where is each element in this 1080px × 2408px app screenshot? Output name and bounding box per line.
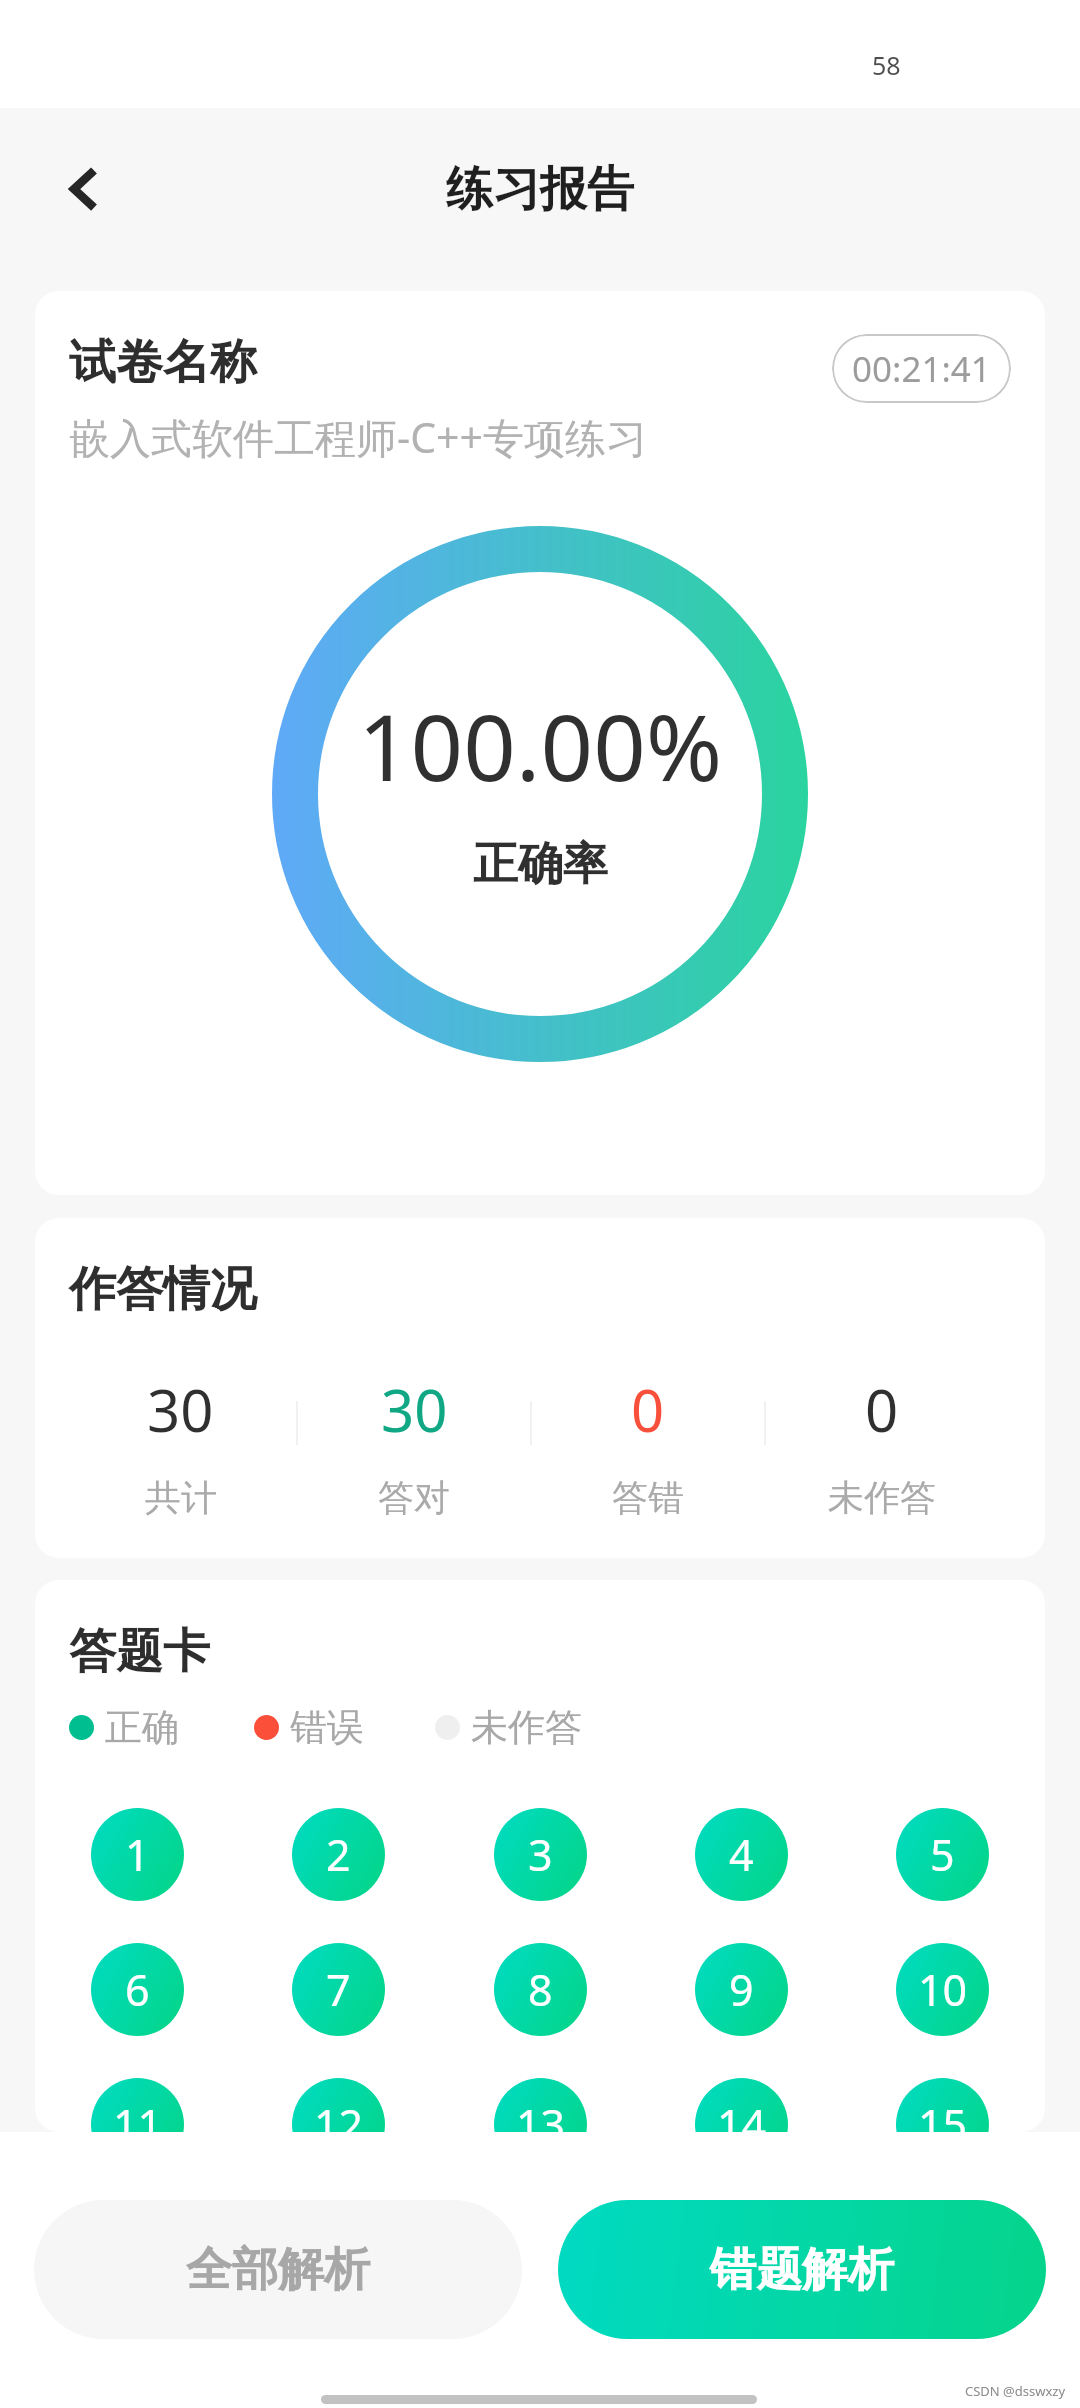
button[interactable]: 错题解析 — [558, 2200, 1046, 2339]
button[interactable]: 1 — [91, 1808, 184, 1901]
button[interactable]: 6 — [91, 1943, 184, 2036]
button[interactable]: 10 — [896, 1943, 989, 2036]
button[interactable]: 14 — [695, 2078, 788, 2132]
staticText: 未作答 — [471, 1704, 582, 1751]
staticText: 答错 — [612, 1475, 684, 1520]
staticText: 共计 — [145, 1475, 217, 1520]
button[interactable]: 15 — [896, 2078, 989, 2132]
staticText: 正确率 — [473, 836, 608, 893]
button[interactable]: 3 — [494, 1808, 587, 1901]
staticText: 11 — [113, 2095, 163, 2132]
staticText: 0 — [631, 1370, 665, 1449]
staticText: 7 — [326, 1960, 351, 2019]
button[interactable]: 8 — [494, 1943, 587, 2036]
button[interactable]: 4 — [695, 1808, 788, 1901]
staticText: 错误 — [290, 1704, 364, 1751]
staticText: 58 — [872, 48, 901, 82]
staticText: 1 — [125, 1825, 150, 1884]
staticText: 未作答 — [828, 1475, 936, 1520]
staticText: 答对 — [378, 1475, 450, 1520]
button[interactable]: 12 — [292, 2078, 385, 2132]
staticText: 0 — [865, 1370, 899, 1449]
button[interactable]: 00:21:41 — [832, 334, 1011, 403]
button[interactable]: Back — [26, 160, 106, 240]
staticText: 00:21:41 — [852, 345, 991, 393]
staticText: 答题卡 — [69, 1622, 210, 1681]
button[interactable]: 7 — [292, 1943, 385, 2036]
button[interactable]: 13 — [494, 2078, 587, 2132]
staticText: 15 — [918, 2095, 968, 2132]
button[interactable]: 全部解析 — [34, 2200, 522, 2339]
staticText: 9 — [729, 1960, 754, 2019]
staticText: 100.00% — [358, 683, 723, 808]
staticText: 错题解析 — [710, 2241, 894, 2299]
staticText: 10 — [918, 1960, 968, 2019]
staticText: 2 — [326, 1825, 351, 1884]
staticText: 30 — [147, 1370, 214, 1449]
button[interactable]: 9 — [695, 1943, 788, 2036]
staticText: 13 — [516, 2095, 566, 2132]
staticText: 12 — [314, 2095, 364, 2132]
staticText: 30 — [381, 1370, 448, 1449]
staticText: CSDN @dsswxzy — [965, 2382, 1066, 2400]
staticText: 全部解析 — [186, 2241, 370, 2299]
staticText: 嵌入式软件工程师-C++专项练习 — [69, 409, 648, 465]
staticText: 3 — [528, 1825, 553, 1884]
button[interactable]: 5 — [896, 1808, 989, 1901]
staticText: 练习报告 — [446, 160, 634, 219]
staticText: 正确 — [105, 1704, 179, 1751]
staticText: 5 — [930, 1825, 955, 1884]
staticText: 8 — [528, 1960, 553, 2019]
staticText: 6 — [125, 1960, 150, 2019]
staticText: 14 — [717, 2095, 767, 2132]
staticText: 4 — [729, 1825, 754, 1884]
button[interactable]: 2 — [292, 1808, 385, 1901]
staticText: 试卷名称 — [69, 333, 257, 392]
button[interactable]: 11 — [91, 2078, 184, 2132]
staticText: 作答情况 — [69, 1260, 257, 1319]
